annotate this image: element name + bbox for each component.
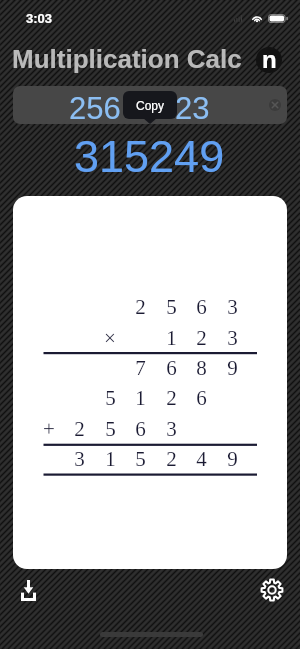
staticText: 2 <box>135 295 146 318</box>
staticText: 3 <box>227 295 238 318</box>
button[interactable]: 256 <box>13 86 287 124</box>
staticText: 6 <box>166 356 177 379</box>
staticText: 1 <box>135 386 146 409</box>
staticText: 315249 <box>74 131 225 181</box>
staticText: 1 <box>105 447 116 470</box>
staticText: 3 <box>227 326 238 349</box>
staticText: × <box>104 326 116 349</box>
button[interactable]: Copy <box>123 91 177 119</box>
staticText: + <box>43 417 55 440</box>
staticText: 2 <box>166 447 177 470</box>
staticText: 8 <box>196 356 207 379</box>
staticText: n <box>262 47 277 72</box>
staticText: 2 <box>166 386 177 409</box>
staticText: Copy <box>136 99 165 112</box>
button[interactable]: Clear <box>263 93 287 117</box>
staticText: 6 <box>196 386 207 409</box>
staticText: 7 <box>135 356 146 379</box>
staticText: 5 <box>166 295 177 318</box>
staticText: 5 <box>135 447 146 470</box>
staticText: 6 <box>196 295 207 318</box>
staticText: 2 <box>196 326 207 349</box>
staticText: 5 <box>105 417 116 440</box>
button[interactable]: Download <box>13 575 43 605</box>
button[interactable]: Menu <box>256 47 282 73</box>
staticText: 1 <box>166 326 177 349</box>
staticText: 3:03 <box>26 11 53 26</box>
staticText: 23 <box>175 91 210 124</box>
staticText: 3 <box>166 417 177 440</box>
staticText: 5 <box>105 386 116 409</box>
staticText: 4 <box>196 447 207 470</box>
button[interactable]: Settings <box>257 575 287 605</box>
staticText: 256 <box>69 91 121 124</box>
staticText: 2 <box>74 417 85 440</box>
staticText: Multiplication Calc <box>12 44 242 73</box>
staticText: 3 <box>74 447 85 470</box>
staticText: 9 <box>227 356 238 379</box>
staticText: 6 <box>135 417 146 440</box>
staticText: 9 <box>227 447 238 470</box>
